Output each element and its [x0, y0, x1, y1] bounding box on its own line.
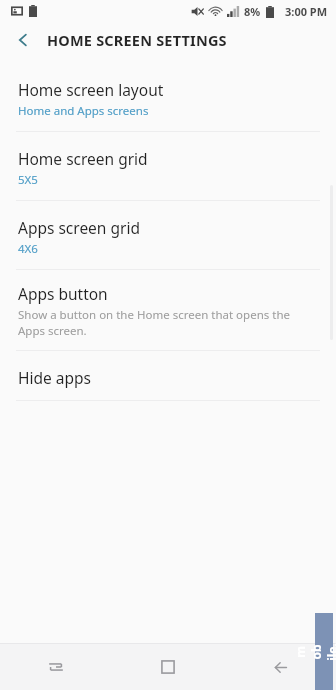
staticText: Apps button [18, 283, 108, 304]
button[interactable]: Home [112, 644, 224, 690]
staticText: 3:00 PM [285, 4, 328, 19]
button[interactable]: Hide apps [0, 351, 336, 400]
button[interactable]: Home screen layout [0, 63, 336, 131]
button[interactable]: Apps screen grid [0, 201, 336, 269]
staticText: Hide apps [18, 367, 91, 388]
staticText: 5X5 [18, 172, 38, 188]
button[interactable]: Apps button [0, 270, 336, 350]
button[interactable]: Back [224, 644, 336, 690]
staticText: Home and Apps screens [18, 103, 149, 119]
button[interactable]: Recents [0, 644, 112, 690]
staticText: 8% [244, 4, 261, 19]
staticText: Show a button on the Home screen that op… [18, 307, 290, 338]
staticText: 4X6 [18, 241, 38, 257]
staticText: Home screen grid [18, 148, 148, 169]
staticText: HOME SCREEN SETTINGS [47, 30, 227, 50]
staticText: Apps screen grid [18, 217, 140, 238]
staticText: mobile.ir [292, 643, 336, 661]
button[interactable]: Back [8, 25, 38, 55]
button[interactable]: Home screen grid [0, 132, 336, 200]
staticText: Home screen layout [18, 79, 164, 100]
